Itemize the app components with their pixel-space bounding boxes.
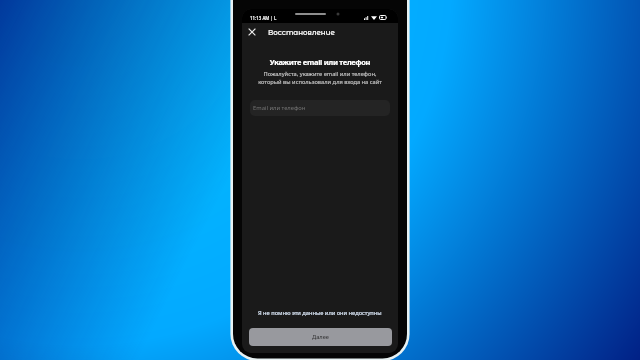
button[interactable]: Email или телефон <box>250 100 390 116</box>
button[interactable]: Я не помню эти данные или они недоступны <box>242 308 398 317</box>
staticText: Укажите email или телефон <box>242 57 398 67</box>
button[interactable]: Close <box>242 22 262 42</box>
staticText: Далее <box>312 333 329 341</box>
staticText: 11:13 AM | L <box>250 15 277 21</box>
other: Close <box>250 30 256 36</box>
staticText: Пожалуйста, укажите email или телефон, к… <box>242 70 398 86</box>
staticText: Восстановление <box>268 28 335 37</box>
staticText: Я не помню эти данные или они недоступны <box>258 309 382 317</box>
button[interactable]: Далее <box>249 328 392 346</box>
staticText: Email или телефон <box>253 104 306 112</box>
